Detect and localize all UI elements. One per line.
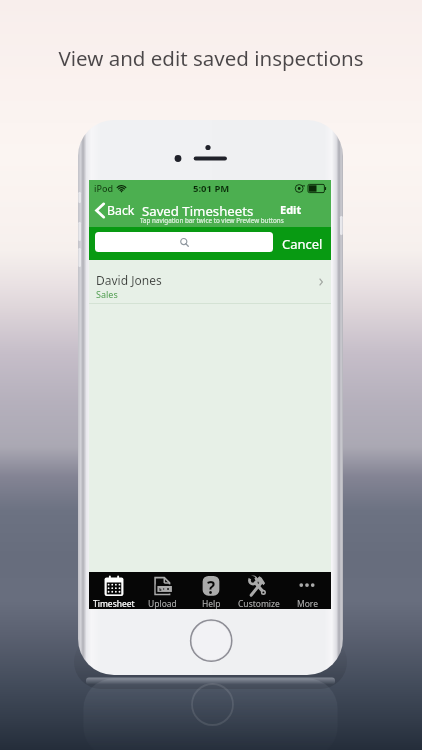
- button[interactable]: [95, 232, 273, 252]
- staticText: Tap navigation bar twice to view Preview…: [140, 216, 284, 225]
- button[interactable]: Back: [93, 202, 135, 219]
- staticText: More: [297, 598, 318, 610]
- staticText: Customize: [238, 598, 280, 610]
- staticText: David Jones: [96, 272, 162, 288]
- staticText: Upload: [148, 598, 177, 610]
- staticText: Back: [107, 202, 135, 219]
- button[interactable]: Edit: [280, 202, 302, 217]
- button[interactable]: More: [283, 572, 331, 609]
- button[interactable]: Timesheet: [89, 572, 138, 609]
- button[interactable]: ?: [187, 572, 235, 609]
- button[interactable]: David Jones: [89, 260, 331, 304]
- staticText: Help: [202, 598, 221, 610]
- staticText: 5:01 PM: [193, 182, 230, 195]
- staticText: ?: [207, 576, 216, 599]
- button[interactable]: Customize: [235, 572, 283, 609]
- staticText: Timesheet: [93, 598, 135, 610]
- staticText: Saved Timesheets: [142, 202, 254, 220]
- staticText: View and edit saved inspections: [0, 44, 422, 72]
- staticText: iPod: [94, 182, 113, 194]
- button[interactable]: Cancel: [282, 235, 323, 253]
- button[interactable]: Upload: [138, 572, 187, 609]
- staticText: Sales: [96, 288, 118, 300]
